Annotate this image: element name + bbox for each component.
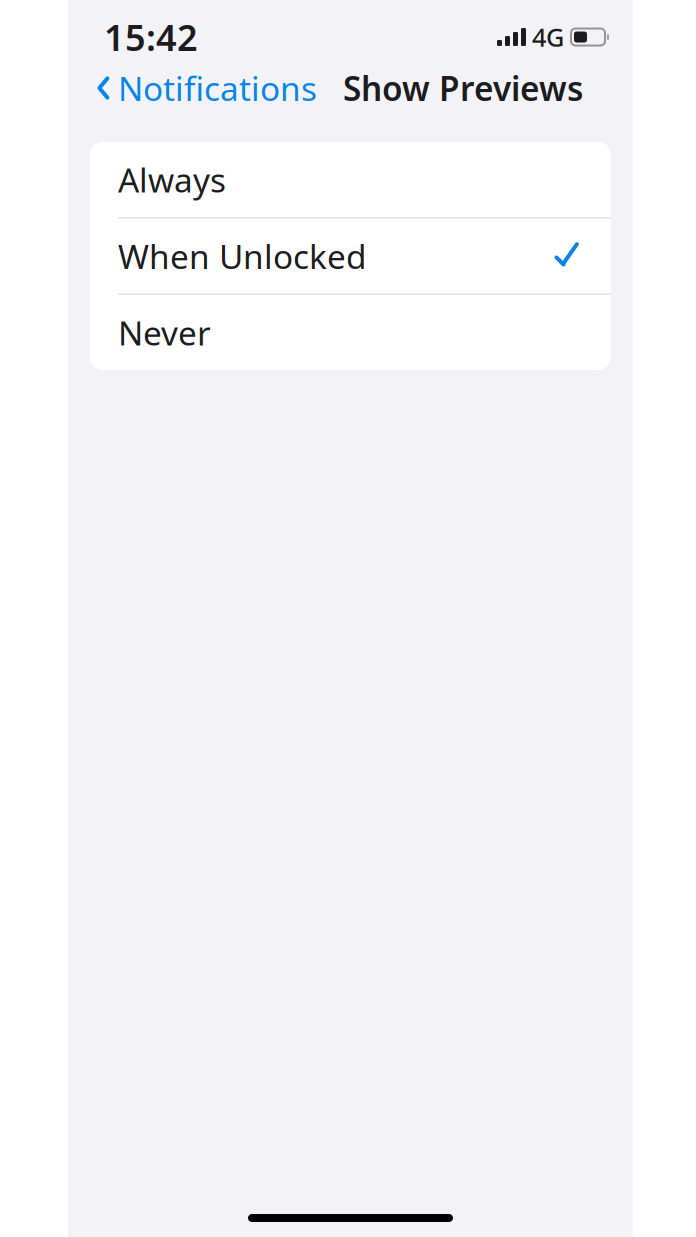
staticText: 15:42 — [104, 13, 198, 61]
button[interactable]: Never — [90, 295, 611, 370]
staticText: Always — [118, 157, 226, 202]
staticText: When Unlocked — [118, 234, 367, 278]
staticText: Notifications — [118, 66, 317, 110]
staticText: Show Previews — [343, 66, 583, 110]
button[interactable]: When Unlocked — [90, 218, 611, 293]
button[interactable]: Notifications — [82, 58, 317, 118]
button[interactable]: Always — [90, 142, 611, 217]
staticText: 4G — [532, 20, 564, 54]
staticText: Never — [118, 310, 211, 355]
